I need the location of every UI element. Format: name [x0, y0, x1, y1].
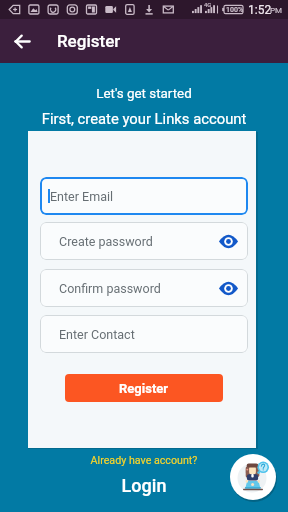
- staticText: Confirm password: [59, 281, 161, 296]
- button[interactable]: Create password: [40, 222, 248, 260]
- staticText: Create password: [59, 234, 153, 249]
- button[interactable]: Toggle password visibility: [218, 231, 239, 252]
- button[interactable]: Enter Contact: [40, 315, 248, 353]
- staticText: 1:52: [248, 3, 272, 17]
- button[interactable]: Register: [65, 374, 223, 402]
- button[interactable]: Login: [0, 475, 288, 496]
- staticText: First, create your Links account: [0, 110, 288, 127]
- button[interactable]: Confirm password: [40, 269, 248, 307]
- staticText: 4G: [204, 1, 212, 8]
- staticText: Enter Email: [50, 189, 114, 204]
- staticText: Enter Contact: [59, 327, 135, 342]
- staticText: Register: [119, 381, 169, 396]
- button[interactable]: Already have account?: [0, 454, 288, 467]
- button[interactable]: Back: [9, 28, 36, 55]
- staticText: PM: [270, 6, 283, 15]
- button[interactable]: Enter Email: [40, 177, 248, 215]
- button[interactable]: Help: [230, 454, 276, 500]
- staticText: Register: [57, 31, 121, 51]
- button[interactable]: Toggle password visibility: [218, 278, 239, 299]
- staticText: 100%: [226, 6, 244, 14]
- staticText: Let's get started: [0, 86, 288, 102]
